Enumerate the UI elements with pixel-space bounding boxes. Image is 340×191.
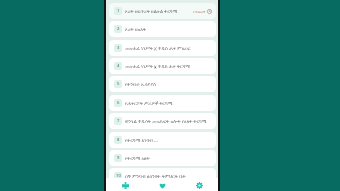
button[interactable]: 6 [109, 95, 216, 111]
button[interactable]: 10 [109, 168, 216, 184]
staticText: የመጨረሻ [193, 10, 206, 13]
staticText: 5 [117, 81, 120, 87]
button[interactable]: Favorites [144, 178, 181, 191]
staticText: 3 [117, 45, 120, 51]
staticText: 8 [117, 137, 120, 143]
staticText: የትርጓሜ አገባብ ... [125, 137, 212, 143]
button[interactable]: 1 [109, 3, 216, 19]
staticText: የትርጓሜ ዕለት [125, 155, 212, 161]
staticText: ሰኞ ምንባብ ለሰንበት ትምህርት ቤት [125, 173, 212, 179]
button[interactable]: 8 [109, 132, 216, 148]
button[interactable]: 2 [109, 21, 216, 37]
staticText: ኦሪት ዘጸአት [125, 26, 212, 32]
staticText: የሐዋርያት ሥራዎች ትርጓሜ [125, 100, 212, 106]
staticText: 7 [117, 118, 120, 124]
staticText: 2 [117, 26, 120, 32]
staticText: የትንቢተ ኢሳይያስ [125, 81, 212, 87]
button[interactable]: 4 [109, 58, 216, 74]
staticText: 10 [116, 173, 121, 179]
staticText: ኦሪት ዘፍጥረት ዘልዑል ትርጓሜ [125, 8, 193, 14]
button[interactable]: Library [106, 178, 144, 191]
staticText: 4 [117, 63, 120, 69]
staticText: 1 [117, 8, 120, 14]
button[interactable]: 9 [109, 150, 216, 166]
staticText: መጽሐፈ ነገሥት ፪ ቅዱስ ሐዋ ትርጓሜ [125, 63, 212, 69]
staticText: ወንጌል ቅዱሳት መጻሕፍት ጸሎት የዕለት ትርጓሜ [125, 118, 212, 124]
button[interactable]: 7 [109, 113, 216, 129]
staticText: 9 [117, 155, 120, 161]
button[interactable]: 5 [109, 76, 216, 92]
button[interactable]: Settings [181, 178, 218, 191]
staticText: መጽሐፈ ነገሥት ፩ ቅዱስ ሐዋ ምዕራፍ [125, 45, 212, 51]
staticText: 6 [117, 100, 120, 106]
button[interactable]: 3 [109, 40, 216, 56]
